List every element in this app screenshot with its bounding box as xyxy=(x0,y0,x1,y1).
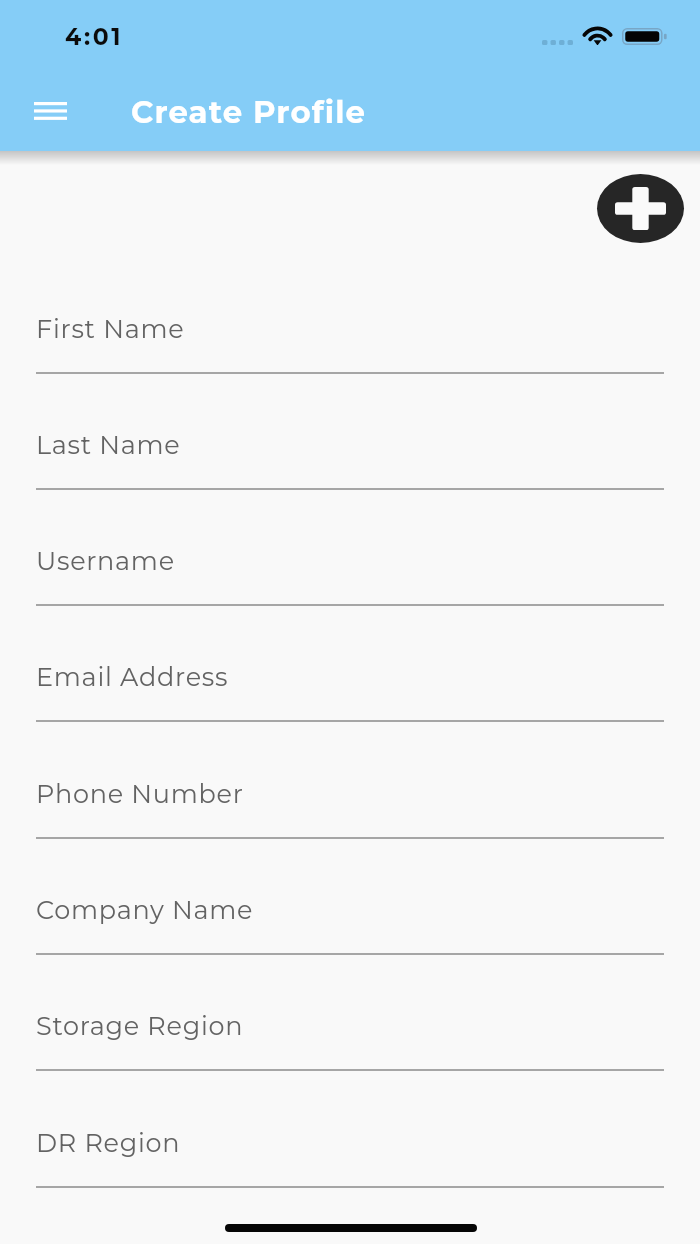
staticText: 4:01 xyxy=(65,22,124,51)
staticText: Last Name xyxy=(36,429,181,460)
button[interactable]: First Name xyxy=(0,281,700,391)
staticText: DR Region xyxy=(36,1127,181,1158)
button[interactable]: Company Name xyxy=(0,862,700,972)
staticText: Storage Region xyxy=(36,1010,244,1041)
button[interactable]: Last Name xyxy=(0,397,700,507)
button[interactable]: Menu xyxy=(17,83,84,139)
button[interactable]: Phone Number xyxy=(0,746,700,856)
staticText: First Name xyxy=(36,313,185,344)
button[interactable]: Add xyxy=(597,174,684,243)
staticText: Username xyxy=(36,545,175,576)
button[interactable]: DR Region xyxy=(0,1095,700,1205)
button[interactable]: Email Address xyxy=(0,629,700,739)
staticText: Create Profile xyxy=(131,93,367,131)
staticText: Company Name xyxy=(36,894,254,925)
button[interactable]: Storage Region xyxy=(0,978,700,1088)
button[interactable]: Username xyxy=(0,513,700,623)
staticText: Email Address xyxy=(36,661,229,692)
staticText: Phone Number xyxy=(36,778,244,809)
